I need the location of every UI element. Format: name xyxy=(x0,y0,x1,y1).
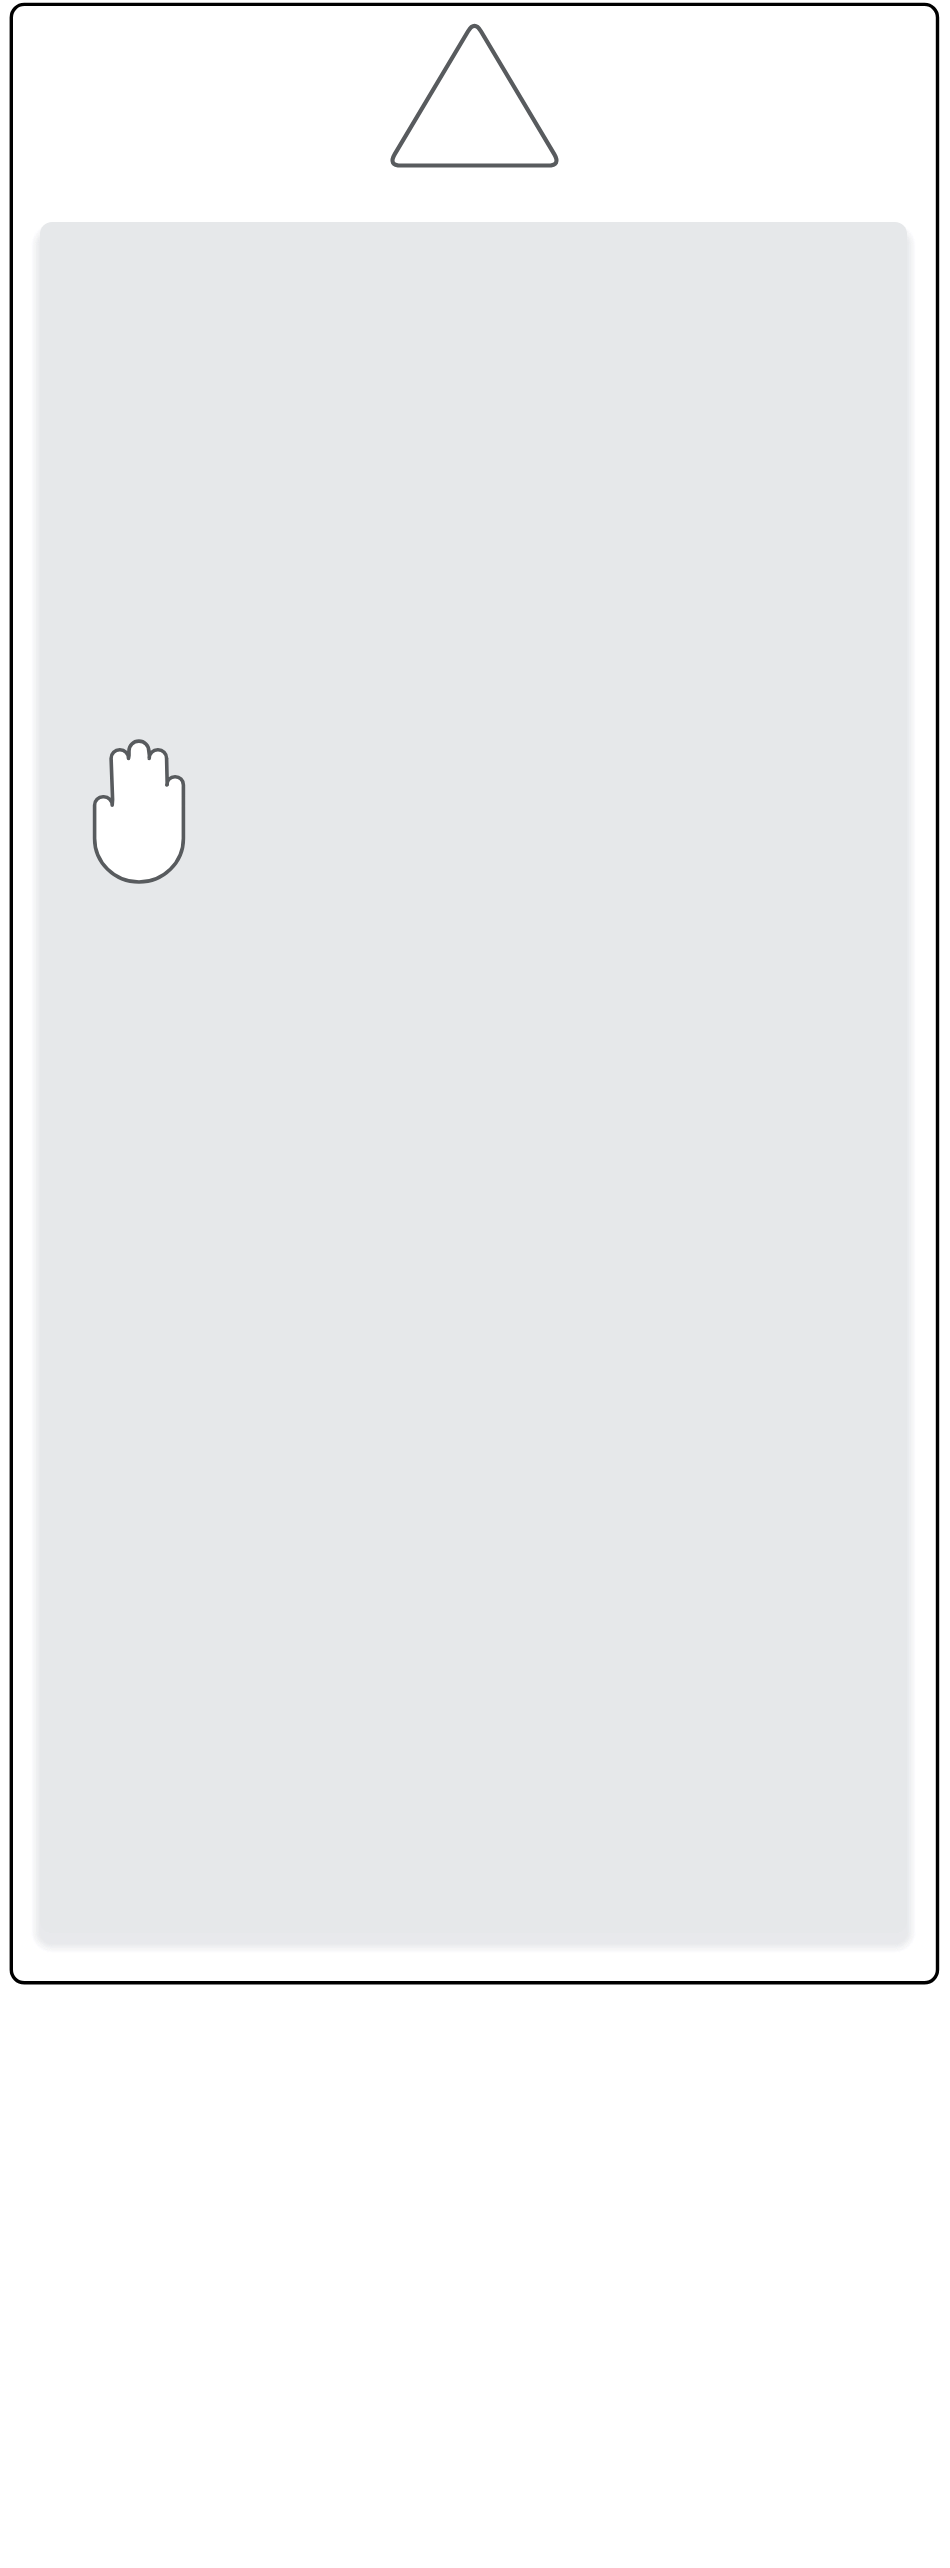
button[interactable]: Touch surface xyxy=(40,222,907,1933)
